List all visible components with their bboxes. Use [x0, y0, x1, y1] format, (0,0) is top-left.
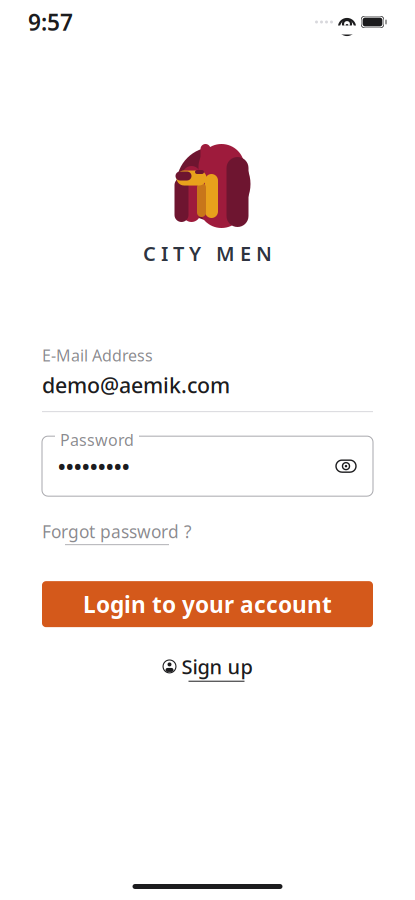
button[interactable]: Sign up	[42, 653, 373, 682]
staticText: Forgot password ?	[42, 520, 192, 543]
button[interactable]: Forgot password ?	[42, 520, 373, 545]
staticText: demo@aemik.com	[42, 371, 230, 399]
staticText: E-Mail Address	[42, 345, 153, 366]
staticText: C I T Y M E N	[143, 240, 272, 267]
staticText: Sign up	[181, 653, 252, 680]
staticText: Login to your account	[83, 589, 332, 619]
button[interactable]: Login to your account	[42, 581, 373, 627]
staticText: Password	[60, 429, 134, 450]
staticText: 9:57	[28, 7, 73, 37]
button[interactable]: E-Mail Address	[42, 345, 373, 412]
button[interactable]: •••••••••	[42, 436, 373, 496]
staticText: •••••••••	[58, 453, 130, 479]
